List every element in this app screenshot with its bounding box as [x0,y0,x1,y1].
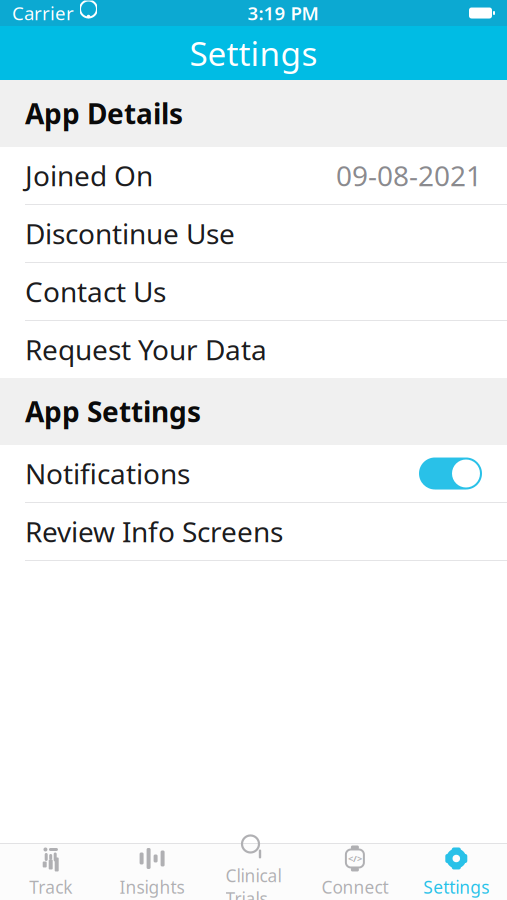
staticText: App Settings [25,393,201,430]
staticText: 3:19 PM [247,1,318,25]
staticText: Insights [120,875,185,898]
staticText: Request Your Data [25,331,267,368]
staticText: Connect [321,875,388,898]
button[interactable]: Discontinue Use [0,205,507,262]
staticText: Clinical Trials [225,864,281,900]
staticText: 09-08-2021 [336,157,482,194]
button[interactable]: Insights [101,843,203,900]
button[interactable]: Review Info Screens [0,503,507,560]
button[interactable]: </> [304,843,406,900]
staticText: </> [348,852,362,865]
staticText: Contact Us [25,273,166,310]
button[interactable]: Track [0,843,101,900]
button[interactable]: Settings [406,843,507,900]
staticText: Track [29,875,72,898]
button[interactable]: Joined On [0,147,507,204]
staticText: Discontinue Use [25,215,235,252]
button[interactable]: Contact Us [0,263,507,320]
staticText: Carrier [12,1,74,25]
staticText: Review Info Screens [25,513,283,550]
staticText: Notifications [25,455,190,492]
button[interactable]: Request Your Data [0,321,507,378]
staticText: App Details [25,95,183,132]
staticText: Joined On [25,157,153,194]
button[interactable]: Notifications toggle, on [0,445,507,502]
staticText: Settings [423,875,489,898]
staticText: Settings [189,31,317,75]
button[interactable]: Clinical Trials [203,843,304,900]
